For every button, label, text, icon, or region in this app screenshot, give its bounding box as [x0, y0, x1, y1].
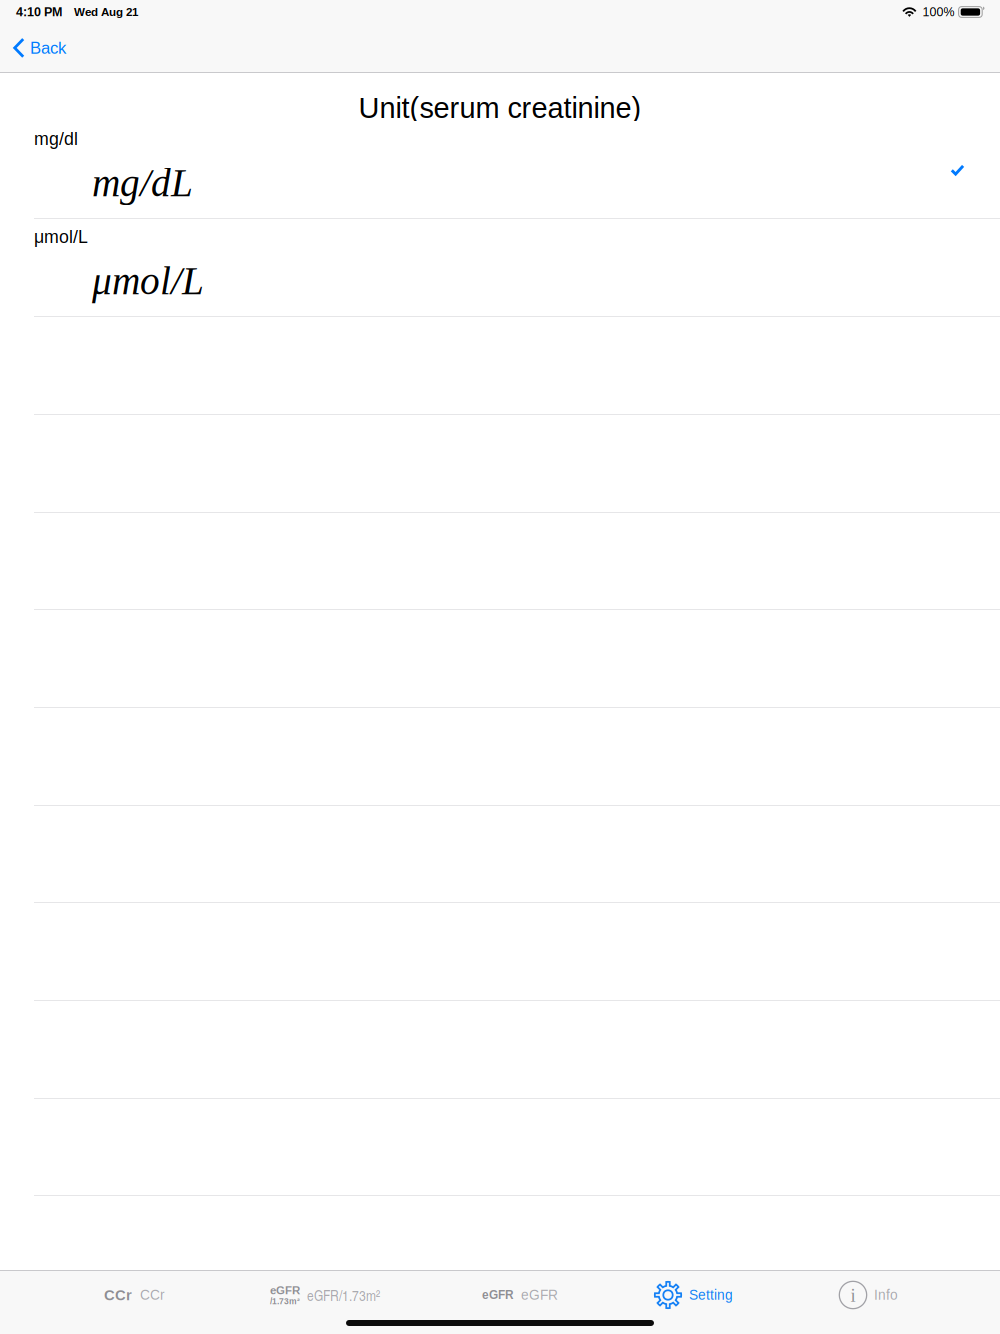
staticText: 100% — [923, 5, 955, 19]
staticText: eGFR/1.73m² — [307, 1285, 380, 1305]
staticText: Back — [30, 39, 66, 57]
staticText: CCr — [140, 1287, 165, 1303]
staticText: μmol/L — [92, 259, 204, 303]
staticText: Wed Aug 21 — [74, 5, 138, 18]
staticText: eGFR — [270, 1284, 300, 1297]
staticText: mg/dl — [34, 129, 78, 149]
staticText: mg/dL — [92, 161, 193, 205]
button[interactable]: eGFR — [482, 1277, 558, 1313]
staticText: μmol/L — [34, 227, 88, 247]
staticText: Unit(serum creatinine) — [358, 92, 641, 124]
button[interactable]: CCr — [104, 1277, 165, 1313]
button[interactable]: μmol/L — [0, 219, 1000, 317]
button[interactable]: eGFR — [270, 1274, 380, 1316]
staticText: eGFR — [521, 1287, 558, 1303]
button[interactable]: Setting — [654, 1271, 733, 1319]
staticText: CCr — [104, 1287, 132, 1303]
staticText: 4:10 PM — [16, 5, 62, 19]
staticText: Setting — [689, 1287, 733, 1303]
button[interactable]: i — [839, 1271, 898, 1319]
button[interactable]: Back — [0, 26, 78, 69]
button[interactable]: mg/dl — [0, 121, 1000, 219]
staticText: i — [850, 1285, 855, 1306]
staticText: /1.73m² — [270, 1297, 300, 1306]
staticText: Info — [874, 1287, 898, 1303]
staticText: eGFR — [482, 1288, 514, 1302]
